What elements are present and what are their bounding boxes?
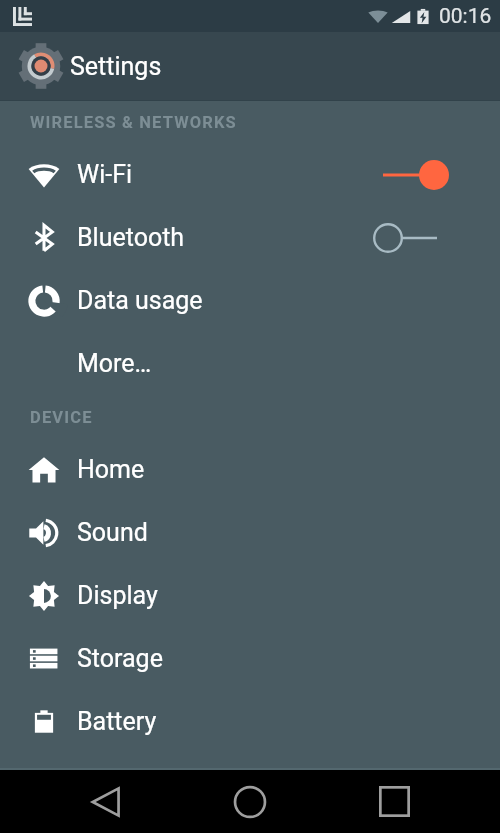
- staticText: Sound: [77, 518, 148, 547]
- staticText: WIRELESS & NETWORKS: [30, 113, 237, 129]
- staticText: Battery: [77, 707, 157, 736]
- staticText: Settings: [70, 52, 162, 81]
- staticText: Wi-Fi: [77, 160, 133, 189]
- button[interactable]: Back: [70, 770, 144, 833]
- staticText: Bluetooth: [77, 223, 185, 252]
- button[interactable]: Bluetooth: [0, 206, 500, 269]
- button[interactable]: Data usage: [0, 269, 500, 332]
- button[interactable]: More…: [0, 332, 500, 395]
- staticText: Data usage: [77, 286, 203, 315]
- staticText: Display: [77, 581, 158, 610]
- button[interactable]: Settings icon: [17, 42, 65, 90]
- button[interactable]: Display: [0, 564, 500, 627]
- staticText: 00:16: [439, 4, 492, 29]
- staticText: Home: [77, 455, 145, 484]
- button[interactable]: Home: [0, 438, 500, 501]
- button[interactable]: Wi-Fi on: [373, 158, 449, 192]
- staticText: Storage: [77, 644, 163, 673]
- staticText: DEVICE: [30, 408, 93, 424]
- button[interactable]: Sound: [0, 501, 500, 564]
- button[interactable]: Recent apps: [357, 770, 431, 833]
- button[interactable]: Home: [213, 770, 287, 833]
- button[interactable]: Battery: [0, 690, 500, 753]
- staticText: More…: [77, 349, 152, 378]
- button[interactable]: Wi-Fi: [0, 143, 500, 206]
- button[interactable]: Storage: [0, 627, 500, 690]
- button[interactable]: Bluetooth off: [373, 221, 449, 255]
